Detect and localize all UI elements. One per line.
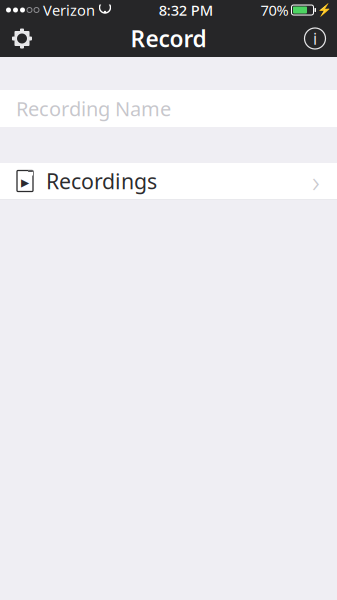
staticText: 70% [260, 0, 288, 20]
button[interactable]: Recording Name [0, 90, 337, 127]
staticText: Verizon [43, 0, 95, 20]
staticText: Record [130, 23, 206, 53]
button[interactable]: ▶ [0, 163, 337, 199]
staticText: Recordings [46, 167, 157, 195]
staticText: ▶ [21, 176, 29, 188]
button[interactable]: Info [293, 20, 337, 57]
button[interactable]: Settings [0, 20, 44, 57]
staticText: i [313, 28, 317, 49]
staticText: Recording Name [16, 95, 171, 122]
staticText: 8:32 PM [159, 0, 213, 20]
staticText: › [312, 161, 320, 200]
staticText: ⚡ [317, 3, 332, 17]
